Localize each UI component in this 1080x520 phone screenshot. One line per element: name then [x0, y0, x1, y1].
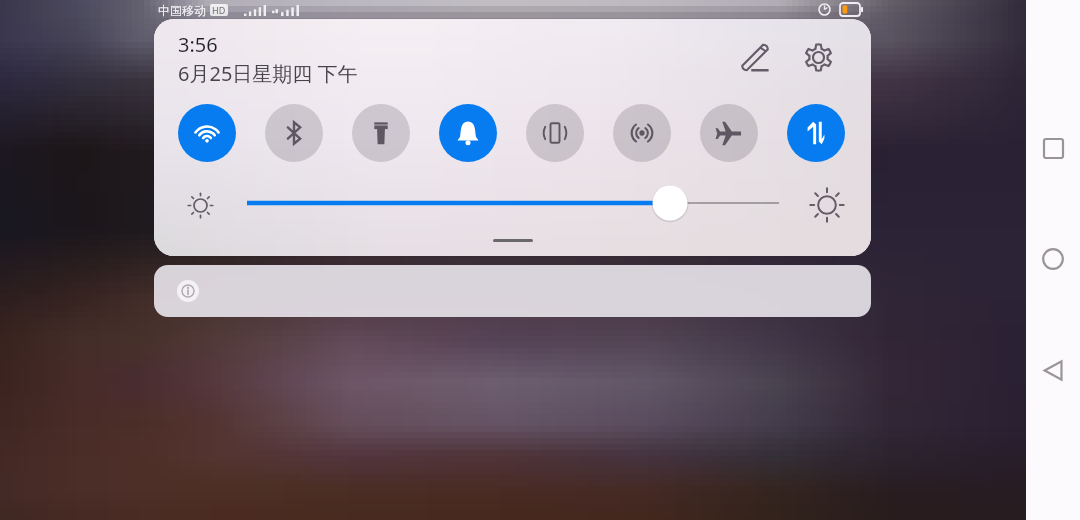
button[interactable]: WLAN — [178, 104, 236, 162]
button[interactable]: Decrease brightness — [184, 189, 216, 221]
button[interactable]: Back — [1039, 356, 1067, 384]
staticText: 中国移动 — [158, 3, 206, 18]
button[interactable]: Flashlight — [352, 104, 410, 162]
button[interactable]: Home — [1039, 245, 1067, 273]
button[interactable]: Brightness — [229, 185, 799, 221]
button[interactable]: Increase brightness — [809, 187, 845, 223]
staticText: HD — [212, 4, 226, 16]
button[interactable]: Hotspot — [613, 104, 671, 162]
staticText: 6月25日星期四 下午 — [178, 60, 358, 87]
button[interactable]: Settings — [794, 33, 842, 81]
button[interactable]: Bluetooth — [265, 104, 323, 162]
button[interactable]: Airplane mode — [700, 104, 758, 162]
button[interactable]: Mobile data — [787, 104, 845, 162]
button[interactable]: Edit — [732, 35, 780, 83]
button[interactable]: Ring — [439, 104, 497, 162]
button[interactable]: Vibrate — [526, 104, 584, 162]
button[interactable]: Recent apps — [1039, 134, 1067, 162]
staticText: 3:56 — [178, 31, 218, 58]
button[interactable] — [154, 265, 871, 317]
